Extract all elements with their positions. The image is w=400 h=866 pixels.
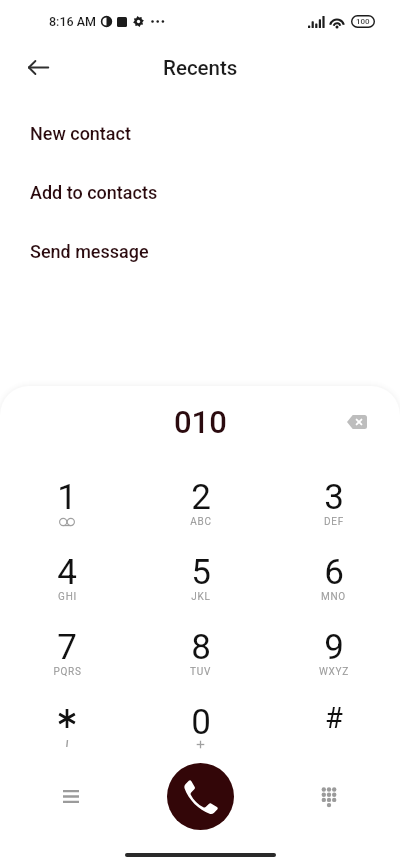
button[interactable]: 4 xyxy=(0,542,134,617)
staticText: 5 xyxy=(191,552,211,593)
button[interactable]: New contact xyxy=(0,104,400,162)
staticText: GHI xyxy=(58,591,77,603)
button[interactable]: Backspace xyxy=(334,400,378,444)
button[interactable]: 5 xyxy=(134,542,267,617)
button[interactable]: Back xyxy=(16,45,60,89)
staticText: 9 xyxy=(324,627,344,668)
button[interactable]: # xyxy=(267,692,400,767)
staticText: Add to contacts xyxy=(30,182,158,203)
staticText: 2 xyxy=(191,477,211,518)
staticText: 8 xyxy=(191,627,211,668)
button[interactable]: 8 xyxy=(134,617,267,692)
button[interactable]: 7 xyxy=(0,617,134,692)
staticText: 1 xyxy=(57,477,77,518)
staticText: 4 xyxy=(57,552,77,593)
button[interactable]: Send message xyxy=(0,222,400,280)
button[interactable]: Dialpad xyxy=(306,774,351,819)
staticText: PQRS xyxy=(53,666,82,678)
staticText: 8:16 AM xyxy=(49,14,96,29)
staticText: 100 xyxy=(356,17,370,26)
staticText: JKL xyxy=(191,591,211,603)
staticText: 7 xyxy=(57,627,77,668)
staticText: TUV xyxy=(190,666,211,678)
staticText: 6 xyxy=(324,552,344,593)
button[interactable]: 3 xyxy=(267,467,400,542)
staticText: New contact xyxy=(30,123,131,144)
button[interactable]: 0 xyxy=(134,692,267,767)
staticText: 010 xyxy=(174,404,227,440)
staticText: DEF xyxy=(324,516,344,528)
staticText: 3 xyxy=(324,477,344,518)
staticText: # xyxy=(325,701,343,735)
button[interactable] xyxy=(0,692,134,767)
staticText: Send message xyxy=(30,241,149,262)
staticText: 0 xyxy=(191,702,211,743)
button[interactable]: Call xyxy=(167,763,234,830)
staticText: ABC xyxy=(190,516,212,528)
button[interactable]: 9 xyxy=(267,617,400,692)
staticText: WXYZ xyxy=(319,666,349,678)
button[interactable]: Call log xyxy=(48,774,93,819)
button[interactable]: 1 xyxy=(0,467,134,542)
button[interactable]: 6 xyxy=(267,542,400,617)
button[interactable]: 2 xyxy=(134,467,267,542)
staticText: Recents xyxy=(163,56,238,80)
staticText: MNO xyxy=(321,591,346,603)
button[interactable]: Add to contacts xyxy=(0,163,400,221)
